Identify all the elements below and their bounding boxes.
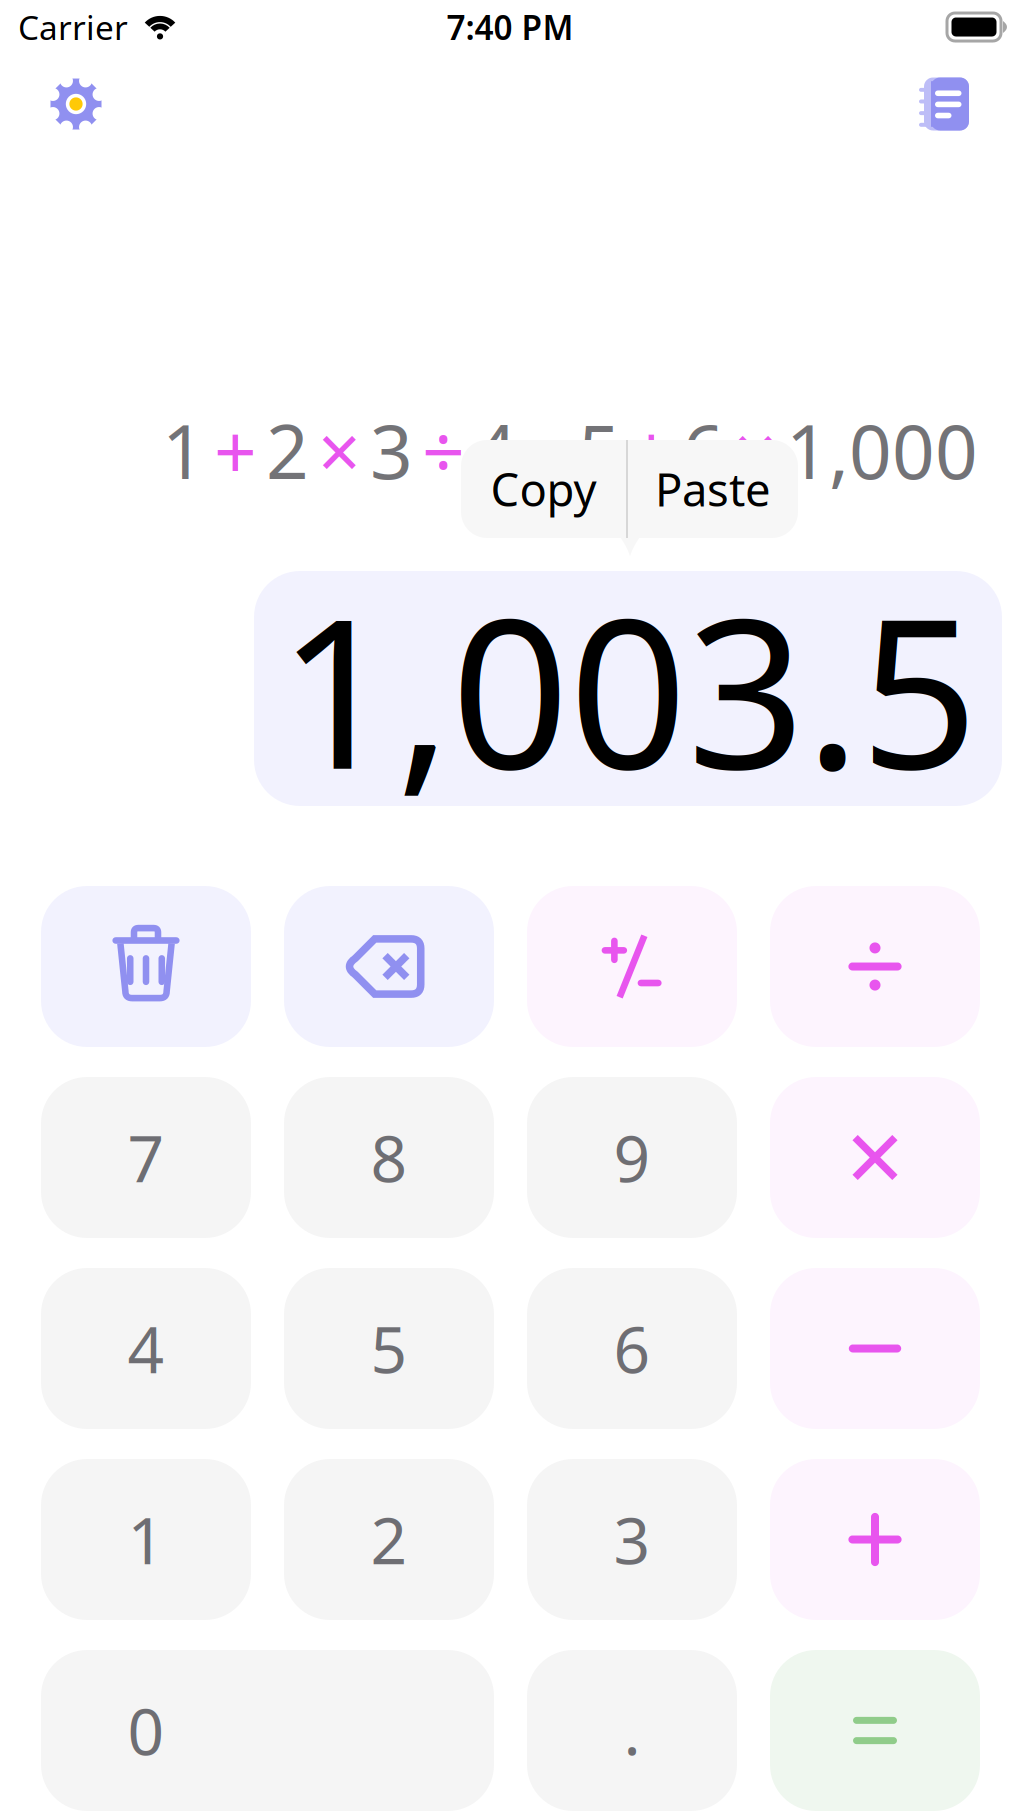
button[interactable]: 2 [284, 1459, 494, 1620]
staticText: 7:40 PM [446, 5, 573, 49]
button[interactable]: Equals [770, 1650, 980, 1811]
button[interactable]: Settings [30, 58, 122, 150]
button[interactable]: 4 [41, 1268, 251, 1429]
staticText: + [214, 400, 257, 500]
staticText: Paste [655, 459, 771, 519]
staticText: 1,000 [786, 400, 978, 500]
button[interactable]: 0 [41, 1650, 494, 1811]
button[interactable]: 9 [527, 1077, 737, 1238]
staticText: − [526, 400, 569, 500]
button[interactable]: 7 [41, 1077, 251, 1238]
staticText: 0 [127, 1688, 164, 1773]
staticText: 6 [613, 1306, 650, 1391]
button[interactable]: 3 [527, 1459, 737, 1620]
button[interactable]: Subtract [770, 1268, 980, 1429]
button[interactable]: . [527, 1650, 737, 1811]
staticText: 1 [162, 400, 205, 500]
button[interactable]: Paste [628, 440, 798, 538]
button[interactable]: 1 [41, 1459, 251, 1620]
staticText: 8 [370, 1115, 407, 1200]
staticText: + [630, 400, 673, 500]
staticText: 1,003.5 [278, 551, 978, 826]
button[interactable]: 6 [527, 1268, 737, 1429]
staticText: 5 [578, 400, 621, 500]
button[interactable]: 8 [284, 1077, 494, 1238]
button[interactable]: Divide [770, 886, 980, 1047]
staticText: 4 [127, 1306, 164, 1391]
button[interactable]: Copy [461, 440, 626, 538]
staticText: × [318, 400, 361, 500]
staticText: Carrier [18, 5, 128, 49]
staticText: 3 [613, 1497, 650, 1582]
staticText: 1 [127, 1497, 164, 1582]
staticText: . [623, 1688, 640, 1773]
staticText: 4 [474, 400, 517, 500]
button[interactable]: Delete [284, 886, 494, 1047]
staticText: 5 [370, 1306, 407, 1391]
staticText: ÷ [422, 400, 465, 500]
staticText: 7 [127, 1115, 164, 1200]
staticText: 2 [370, 1497, 407, 1582]
staticText: 3 [370, 400, 413, 500]
staticText: × [734, 400, 777, 500]
staticText: 2 [266, 400, 309, 500]
staticText: 9 [613, 1115, 650, 1200]
button[interactable]: Toggle sign [527, 886, 737, 1047]
staticText: 6 [682, 400, 725, 500]
button[interactable]: Multiply [770, 1077, 980, 1238]
button[interactable]: History [898, 58, 990, 150]
button[interactable]: Add [770, 1459, 980, 1620]
button[interactable]: Clear all [41, 886, 251, 1047]
staticText: Copy [490, 459, 596, 519]
button[interactable]: 5 [284, 1268, 494, 1429]
